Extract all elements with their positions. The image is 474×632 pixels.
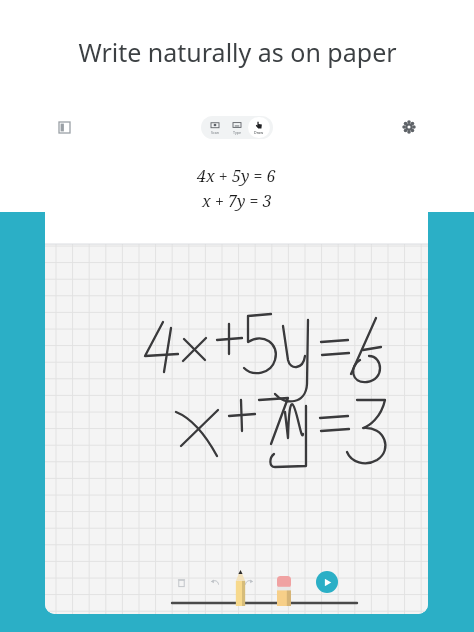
- button[interactable]: Eraser: [277, 576, 291, 606]
- button[interactable]: Show panel: [49, 112, 79, 142]
- staticText: x + 7y = 3: [202, 190, 272, 212]
- staticText: Scan: [211, 130, 219, 135]
- button[interactable]: Solve: [316, 571, 338, 593]
- button[interactable]: Undo: [206, 573, 224, 591]
- button[interactable]: Type: [226, 117, 248, 138]
- staticText: Write naturally as on paper: [78, 35, 397, 69]
- button[interactable]: Settings: [394, 112, 424, 142]
- button[interactable]: Redo: [240, 573, 258, 591]
- staticText: 4x + 5y = 6: [197, 165, 276, 187]
- button[interactable]: Pen: [233, 570, 248, 606]
- button[interactable]: Delete: [172, 573, 190, 591]
- staticText: Draw: [254, 130, 264, 135]
- staticText: Type: [233, 130, 241, 135]
- button[interactable]: Scan: [204, 117, 226, 138]
- button[interactable]: Draw: [248, 117, 270, 138]
